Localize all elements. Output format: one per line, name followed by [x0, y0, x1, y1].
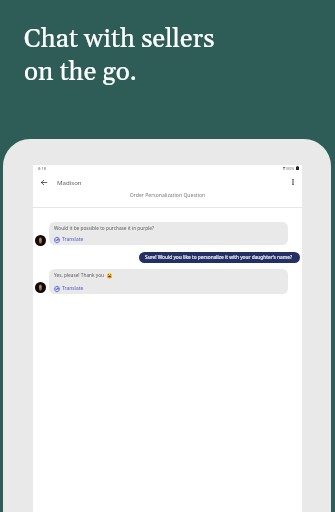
staticText: on the go. [24, 56, 137, 89]
staticText: Madison [57, 178, 82, 186]
staticText: Sure! Would you like to personalize it w… [145, 254, 293, 261]
staticText: Translate [62, 285, 84, 292]
staticText: 100% [285, 166, 295, 171]
button[interactable]: Back [34, 172, 54, 192]
staticText: Translate [62, 236, 84, 243]
button[interactable]: Sure! Would you like to personalize it w… [139, 252, 300, 263]
staticText: Yes, please! Thank you [54, 272, 105, 278]
staticText: 8:18 [38, 166, 46, 171]
button[interactable]: Yes, please! Thank you [49, 269, 288, 294]
button[interactable]: Would it be possible to purchase it in p… [49, 222, 288, 245]
staticText: Chat with sellers [24, 23, 215, 56]
button[interactable]: More options [283, 172, 303, 192]
staticText: Would it be possible to purchase it in p… [54, 225, 155, 231]
staticText: Order Personalization Question [33, 192, 302, 199]
